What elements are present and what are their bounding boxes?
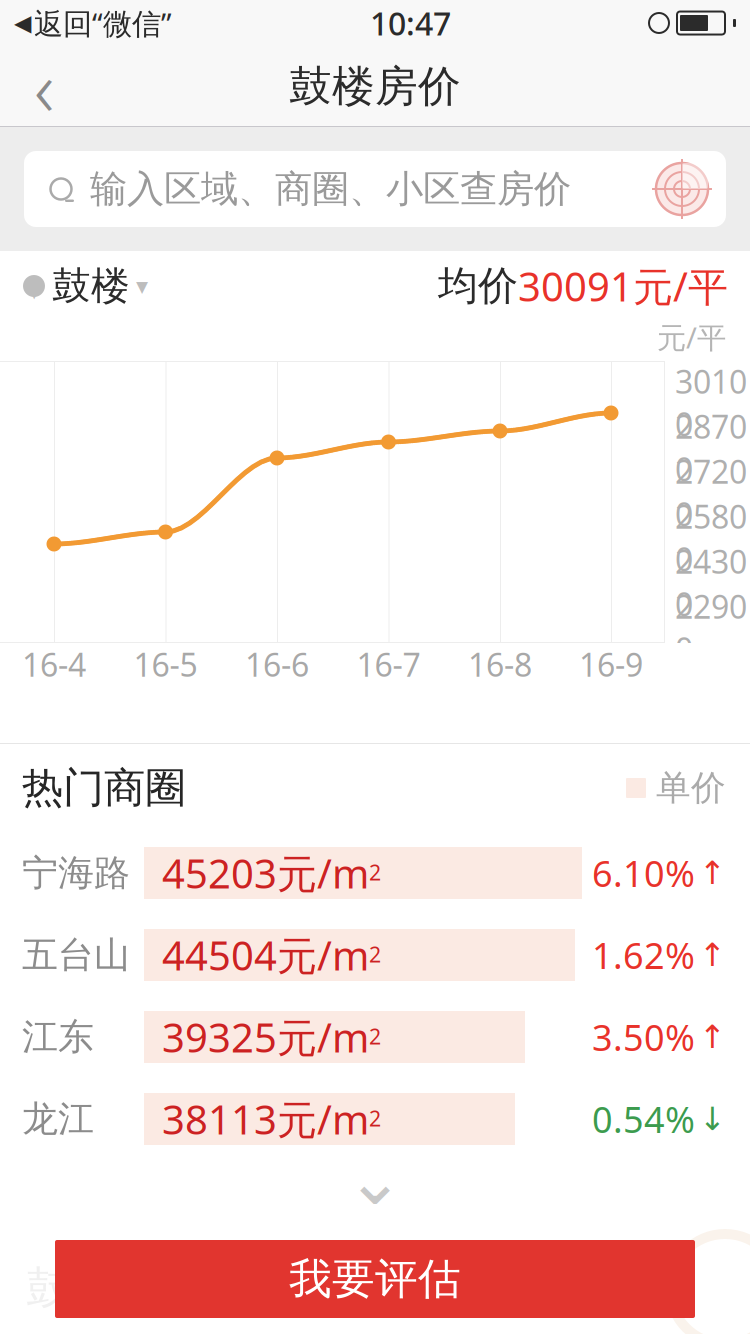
button[interactable]: Expand [0,1160,750,1218]
staticText: 44504 [162,928,277,981]
staticText: ▼ [27,281,40,301]
staticText: 元/平 [657,317,726,356]
staticText: 元/m [277,846,369,899]
staticText: 30091元/平 [518,259,728,312]
staticText: 6.10% [592,849,695,897]
button[interactable]: 五台山 [0,914,750,996]
staticText: 五台山 [22,933,130,977]
staticText: 16-5 [133,643,197,685]
staticText: 0.54% [592,1095,695,1143]
staticText: 2 [369,1022,381,1050]
staticText: 25800 [675,495,747,580]
staticText: 元/m [277,928,369,981]
staticText: 元/m [277,1010,369,1063]
staticText: 输入区域、商圈、小区查房价 [90,166,571,212]
staticText: 16-6 [245,643,309,685]
button[interactable]: ▼ [0,262,148,310]
staticText: 10:47 [370,2,451,44]
button[interactable]: 宁海路 [0,832,750,914]
staticText: ↓ [699,1101,726,1137]
staticText: ◀ [14,10,31,36]
staticText: 元/m [277,1092,369,1145]
staticText: 2 [369,858,381,886]
staticText: ↑ [699,855,726,891]
button[interactable]: 输入区域、商圈、小区查房价 [24,151,726,227]
staticText: 28700 [675,405,747,490]
staticText: ⌄ [346,1141,404,1219]
staticText: 30100 [675,360,747,445]
staticText: 宁海路 [22,851,130,895]
staticText: 返回“微信” [34,3,172,42]
staticText: 45203 [162,846,277,899]
staticText: 1.62% [592,931,695,979]
button[interactable]: Back [0,46,88,126]
staticText: 39325 [162,1010,277,1063]
staticText: 16-8 [468,643,532,685]
staticText: 16-4 [22,643,86,685]
staticText: 27200 [675,450,747,535]
staticText: ↑ [699,937,726,973]
staticText: 鼓楼房价 [289,60,461,113]
staticText: 江东 [22,1015,94,1059]
staticText: ▾ [136,272,148,300]
button[interactable]: 江东 [0,996,750,1078]
staticText: 2 [369,940,381,968]
staticText: 38113 [162,1092,277,1145]
staticText: 鼓楼房价趋势及对比情况 [26,1260,521,1316]
staticText: 我要评估 [289,1253,461,1305]
staticText: 热门商圈 [22,763,186,813]
staticText: ‹ [34,35,54,138]
staticText: 均价 [438,261,518,310]
staticText: 16-9 [579,643,643,685]
staticText: 单价 [656,767,726,809]
staticText: 22900 [675,585,747,670]
staticText: 鼓楼 [52,262,130,310]
staticText: 16-7 [356,643,420,685]
button[interactable]: 龙江 [0,1078,750,1160]
staticText: 24300 [675,540,747,625]
staticText: ↑ [699,1019,726,1055]
button[interactable]: 我要评估 [55,1240,695,1318]
staticText: 龙江 [22,1097,94,1141]
staticText: 3.50% [592,1013,695,1061]
staticText: 2 [369,1104,381,1132]
